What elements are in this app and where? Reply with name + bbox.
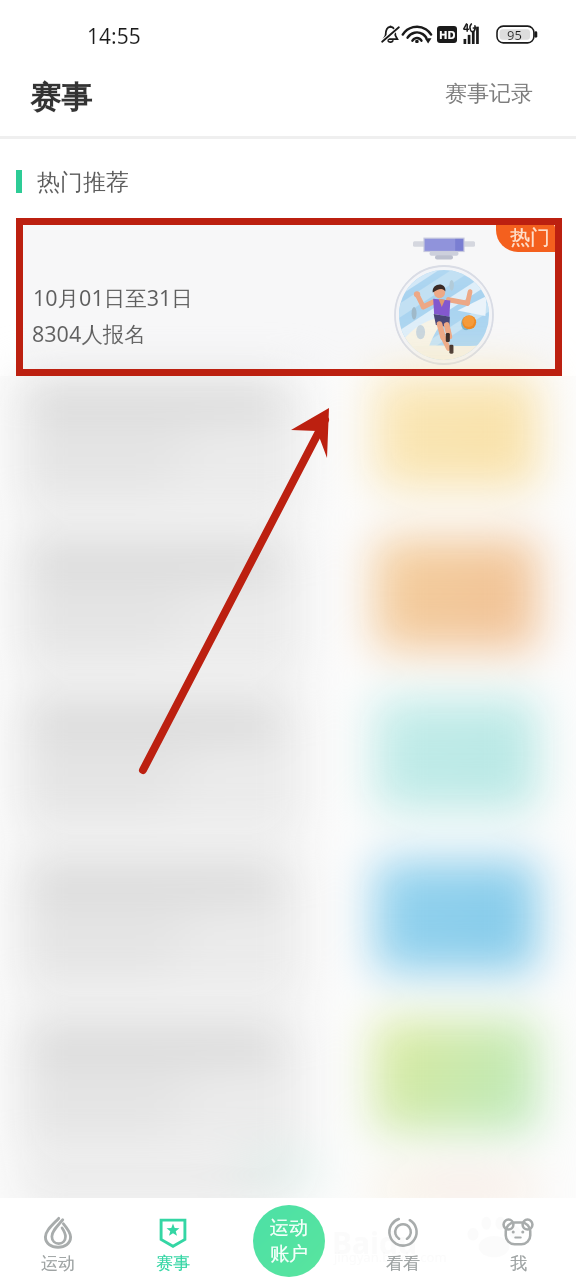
button[interactable]: 10月01日至31日 (23, 224, 555, 372)
staticText: HD (439, 27, 456, 42)
button[interactable]: 我 (470, 1198, 566, 1280)
staticText: 赛事 (156, 1253, 190, 1274)
button[interactable]: 赛事 (125, 1198, 221, 1280)
button[interactable]: 赛事记录 (425, 74, 553, 114)
staticText: 看看 (386, 1253, 420, 1274)
button[interactable]: 热门 (496, 224, 555, 252)
staticText: 赛事 (30, 78, 92, 117)
staticText: 热门推荐 (37, 168, 129, 197)
staticText: Baidu (332, 1222, 418, 1263)
staticText: 8304人报名 (32, 319, 146, 348)
staticText: 10月01日至31日 (33, 283, 193, 312)
staticText: 14:55 (87, 22, 141, 51)
staticText: 我 (510, 1253, 527, 1274)
staticText: 运动 (41, 1253, 75, 1274)
staticText: jingyan.baidu.com (334, 1248, 447, 1266)
staticText: 赛事记录 (445, 80, 533, 108)
button[interactable]: 看看 (355, 1198, 451, 1280)
staticText: 95 (507, 26, 522, 44)
staticText: 热门 (510, 225, 550, 250)
staticText: 运动 账户 (270, 1216, 308, 1266)
button[interactable]: 运动 账户 (253, 1205, 325, 1277)
button[interactable]: 运动 (10, 1198, 106, 1280)
